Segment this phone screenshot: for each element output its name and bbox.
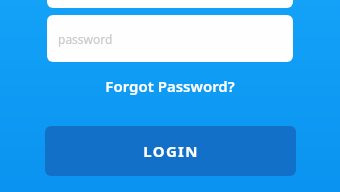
button[interactable]: LOGIN bbox=[45, 126, 296, 176]
staticText: Forgot Password? bbox=[105, 76, 235, 96]
button[interactable]: Forgot Password? bbox=[86, 73, 254, 99]
staticText: LOGIN bbox=[143, 141, 199, 161]
staticText: password bbox=[58, 31, 113, 47]
button[interactable]: password bbox=[47, 15, 293, 62]
button[interactable]: Username field bbox=[47, 0, 293, 8]
